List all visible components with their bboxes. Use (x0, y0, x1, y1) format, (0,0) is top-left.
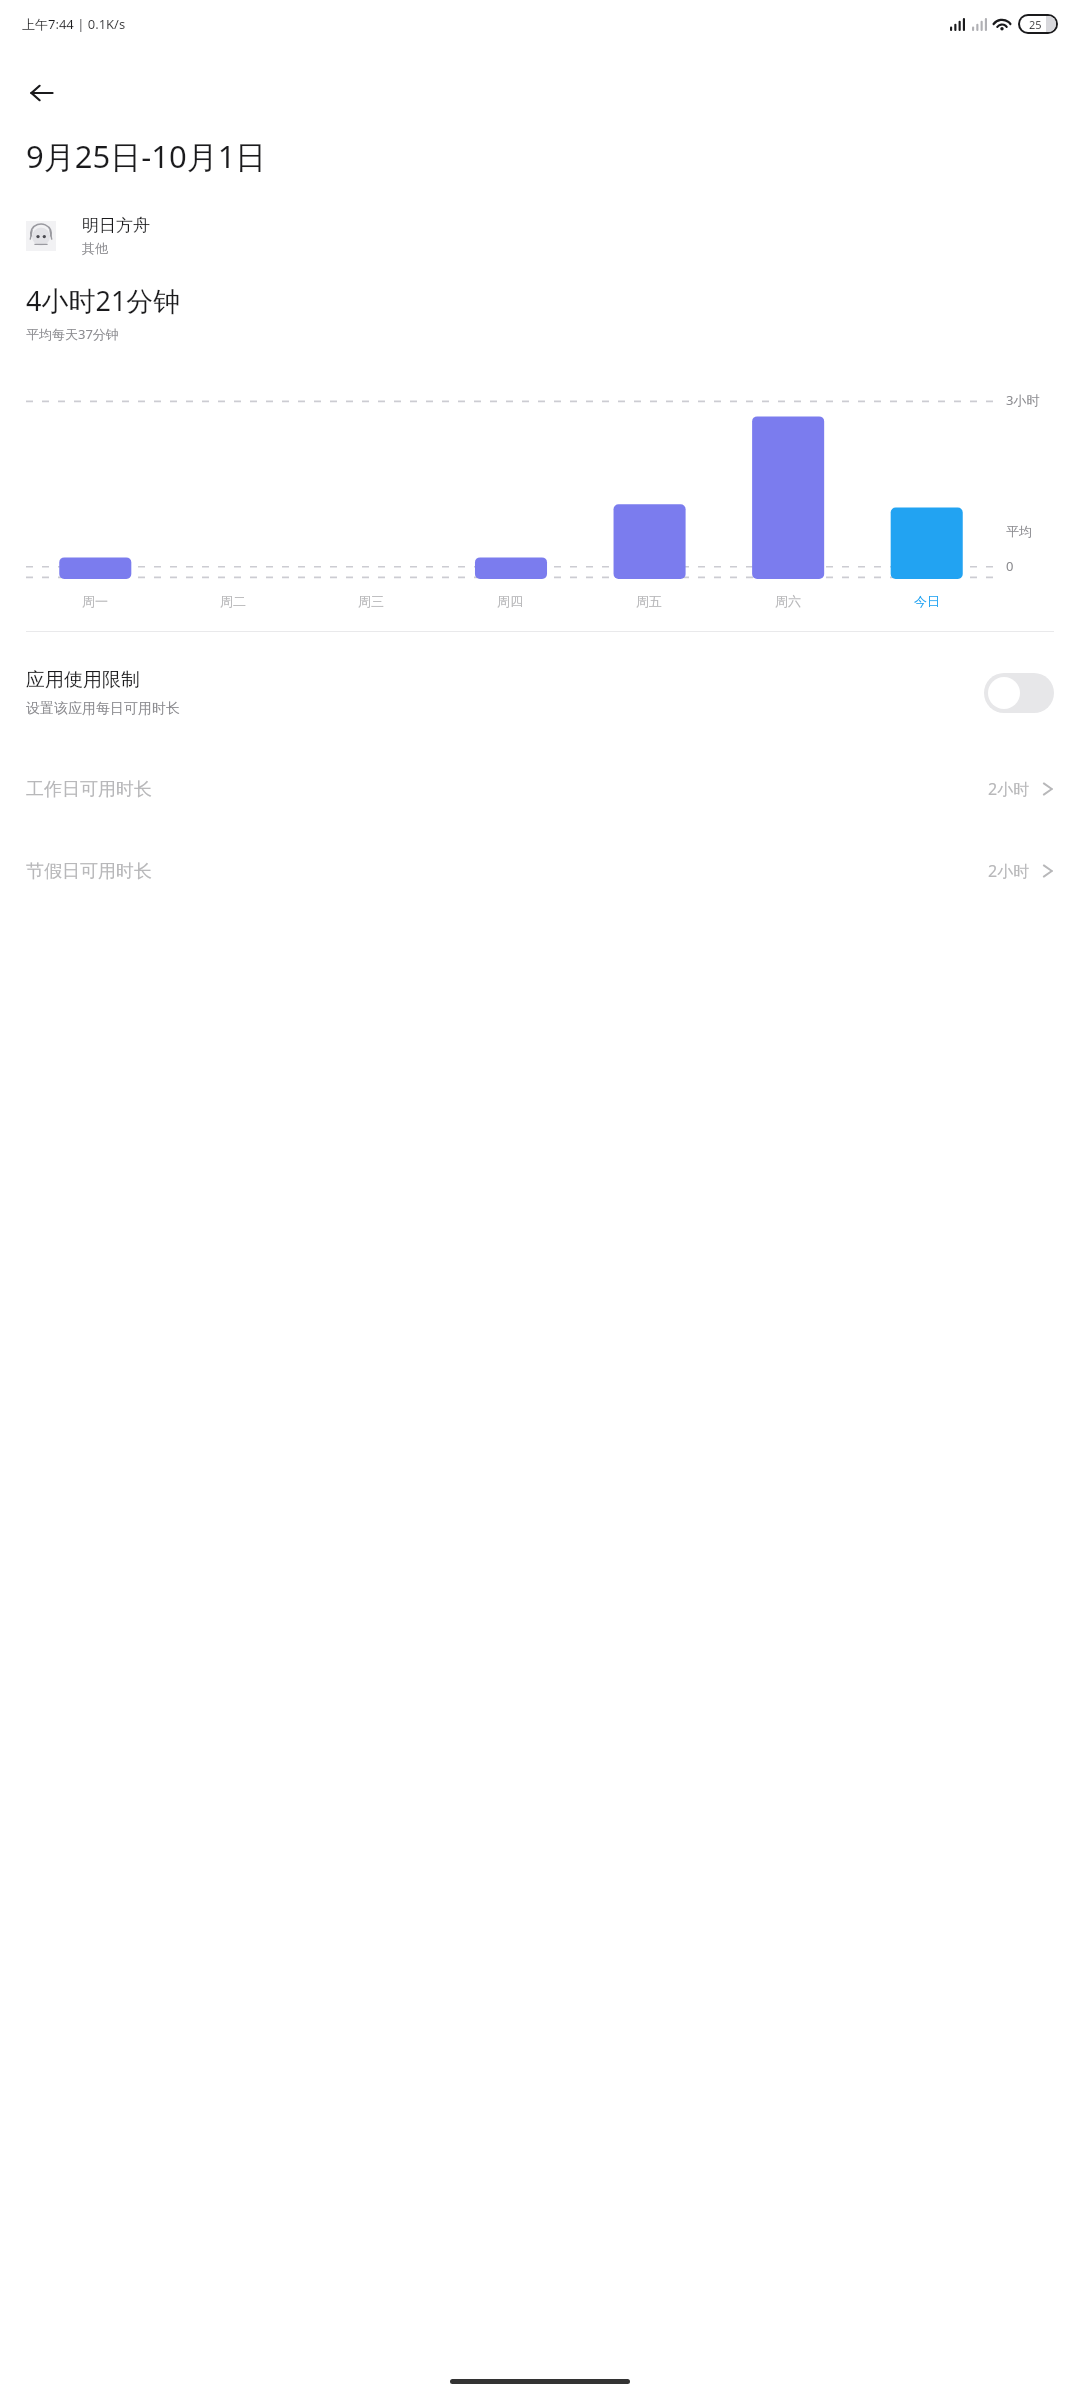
staticText: 节假日可用时长 (26, 860, 988, 883)
staticText: 周六 (775, 593, 801, 609)
staticText: 4小时21分钟 (26, 282, 181, 319)
staticText: 周五 (636, 593, 662, 609)
staticText: 平均每天37分钟 (26, 325, 119, 343)
staticText: 2小时 (988, 860, 1030, 882)
button[interactable]: 工作日可用时长 (0, 748, 1080, 830)
staticText: 工作日可用时长 (26, 778, 988, 801)
button[interactable]: App usage limit toggle (984, 673, 1054, 713)
staticText: 0 (1006, 557, 1014, 575)
staticText: 明日方舟 (82, 215, 150, 236)
staticText: 周一 (82, 593, 108, 609)
button[interactable]: Back (18, 69, 66, 117)
staticText: 2小时 (988, 778, 1030, 800)
button[interactable]: 明日方舟 (0, 211, 1080, 260)
staticText: 周二 (220, 593, 246, 609)
staticText: 周四 (497, 593, 523, 609)
staticText: 周三 (358, 593, 384, 609)
button[interactable]: 应用使用限制 (0, 664, 1080, 722)
staticText: 其他 (82, 240, 108, 256)
staticText: 应用使用限制 (26, 668, 140, 692)
staticText: 今日 (914, 593, 940, 609)
staticText: 上午7:44 | 0.1K/s (22, 15, 126, 33)
button[interactable]: 节假日可用时长 (0, 830, 1080, 912)
staticText: 设置该应用每日可用时长 (26, 700, 180, 718)
staticText: 25 (1029, 17, 1042, 32)
staticText: 3小时 (1006, 391, 1040, 409)
staticText: 平均 (1006, 523, 1032, 539)
staticText: 9月25日-10月1日 (26, 135, 267, 177)
